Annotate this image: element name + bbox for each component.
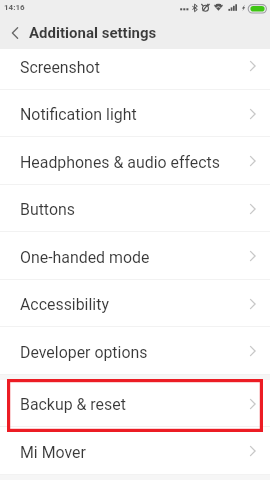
- staticText: Developer options: [20, 343, 242, 362]
- staticText: One-handed mode: [20, 248, 242, 267]
- staticText: Notification light: [20, 105, 242, 124]
- button[interactable]: Headphones & audio effects: [0, 137, 270, 185]
- button[interactable]: Notification light: [0, 90, 270, 137]
- button[interactable]: Mi Mover: [0, 427, 270, 475]
- staticText: Headphones & audio effects: [20, 153, 242, 172]
- other: Highlighted: Backup & reset: [7, 379, 263, 432]
- button[interactable]: Accessibility: [0, 280, 270, 327]
- staticText: Buttons: [20, 200, 242, 219]
- button[interactable]: Developer options: [0, 327, 270, 375]
- staticText: Additional settings: [29, 24, 157, 42]
- staticText: Accessibility: [20, 295, 242, 314]
- staticText: Screenshot: [20, 58, 242, 77]
- button[interactable]: Back: [0, 18, 30, 48]
- button[interactable]: Backup & reset: [0, 380, 270, 427]
- button[interactable]: Buttons: [0, 185, 270, 232]
- staticText: 14:16: [4, 3, 25, 12]
- button[interactable]: Screenshot: [0, 42, 270, 90]
- staticText: Mi Mover: [20, 443, 242, 462]
- staticText: Backup & reset: [20, 395, 242, 414]
- button[interactable]: One-handed mode: [0, 232, 270, 280]
